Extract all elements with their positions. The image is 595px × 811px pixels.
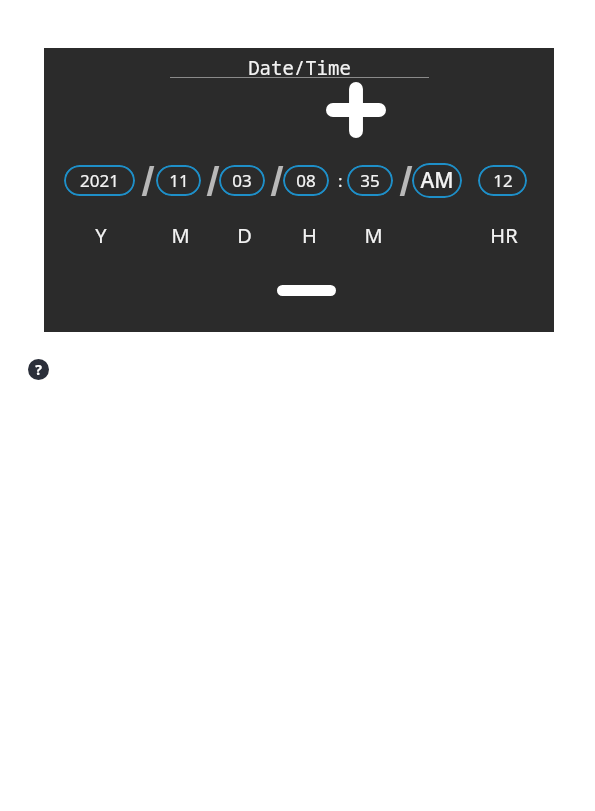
staticText: H <box>302 222 317 248</box>
button[interactable]: 2021 <box>64 165 135 196</box>
staticText: 11 <box>169 169 189 192</box>
button[interactable]: 11 <box>156 165 201 196</box>
staticText: HR <box>490 222 518 248</box>
staticText: 03 <box>232 169 252 192</box>
button[interactable]: AM <box>412 163 462 198</box>
staticText: 35 <box>360 169 380 192</box>
button[interactable]: Increase <box>311 79 401 141</box>
staticText: 12 <box>493 169 513 192</box>
staticText: M <box>171 222 190 248</box>
staticText: AM <box>420 166 454 195</box>
button[interactable]: 03 <box>219 165 265 196</box>
button[interactable]: 12 <box>478 165 527 196</box>
staticText: Y <box>95 222 107 248</box>
button[interactable]: Decrease <box>261 272 351 308</box>
staticText: D <box>237 222 252 248</box>
staticText: 08 <box>296 169 316 192</box>
staticText: 2021 <box>80 169 119 192</box>
staticText: Date/Time <box>248 55 351 79</box>
button[interactable]: 08 <box>283 165 329 196</box>
button[interactable]: Help <box>28 359 49 380</box>
staticText: M <box>364 222 383 248</box>
staticText: ? <box>35 360 42 379</box>
staticText: : <box>338 169 343 192</box>
button[interactable]: 35 <box>347 165 393 196</box>
